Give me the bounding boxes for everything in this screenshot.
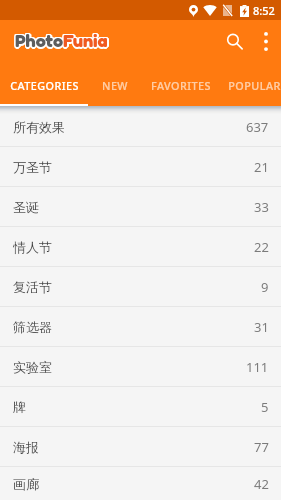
button[interactable]: 情人节 xyxy=(0,227,281,266)
button[interactable]: POPULAR xyxy=(221,68,281,106)
staticText: 情人节 xyxy=(13,239,52,255)
staticText: Funia xyxy=(63,29,108,51)
button[interactable]: FAVORITES xyxy=(141,68,221,106)
staticText: Funia xyxy=(63,28,108,50)
button[interactable]: 筛选器 xyxy=(0,307,281,346)
button[interactable]: 万圣节 xyxy=(0,147,281,186)
staticText: FAVORITES xyxy=(151,78,211,93)
staticText: 画廊 xyxy=(13,476,39,492)
staticText: Photo xyxy=(15,28,63,50)
staticText: 实验室 xyxy=(13,359,52,375)
staticText: NEW xyxy=(102,78,128,93)
staticText: 9 xyxy=(261,278,269,296)
staticText: Photo xyxy=(15,31,63,53)
staticText: Funia xyxy=(64,28,109,50)
button[interactable]: 所有效果 xyxy=(0,107,281,146)
staticText: 77 xyxy=(254,438,269,456)
staticText: Funia xyxy=(65,29,110,51)
staticText: 海报 xyxy=(13,439,39,455)
staticText: POPULAR xyxy=(228,78,281,93)
staticText: Photo xyxy=(14,30,62,52)
staticText: Photo xyxy=(14,29,62,51)
button[interactable]: 圣诞 xyxy=(0,187,281,226)
button[interactable]: 牌 xyxy=(0,387,281,426)
staticText: 21 xyxy=(254,158,269,176)
staticText: Photo xyxy=(14,28,62,50)
staticText: 所有效果 xyxy=(13,119,65,135)
staticText: 637 xyxy=(246,118,269,136)
staticText: CATEGORIES xyxy=(10,78,79,93)
button[interactable]: CATEGORIES xyxy=(0,68,88,106)
staticText: 圣诞 xyxy=(13,199,39,215)
staticText: 复活节 xyxy=(13,279,52,295)
staticText: 筛选器 xyxy=(13,319,52,335)
staticText: Photo xyxy=(15,29,63,51)
staticText: Funia xyxy=(62,30,107,52)
button[interactable]: 海报 xyxy=(0,427,281,466)
staticText: Funia xyxy=(63,31,108,53)
staticText: 31 xyxy=(254,318,269,336)
staticText: 5 xyxy=(261,398,269,416)
staticText: Funia xyxy=(64,30,109,52)
button[interactable]: More options xyxy=(253,18,279,64)
button[interactable]: Search xyxy=(214,18,255,64)
staticText: 8:52 xyxy=(253,3,275,18)
staticText: 牌 xyxy=(13,399,26,415)
staticText: 万圣节 xyxy=(13,159,52,175)
staticText: 42 xyxy=(254,475,269,493)
staticText: 111 xyxy=(246,358,269,376)
button[interactable]: NEW xyxy=(88,68,141,106)
button[interactable]: 实验室 xyxy=(0,347,281,386)
staticText: Photo xyxy=(17,29,65,51)
staticText: 33 xyxy=(254,198,269,216)
staticText: Photo xyxy=(16,30,64,52)
staticText: Photo xyxy=(16,28,64,50)
button[interactable]: 复活节 xyxy=(0,267,281,306)
button[interactable]: 画廊 xyxy=(0,467,281,500)
staticText: 22 xyxy=(254,238,269,256)
staticText: Funia xyxy=(62,29,107,51)
staticText: Funia xyxy=(62,28,107,50)
